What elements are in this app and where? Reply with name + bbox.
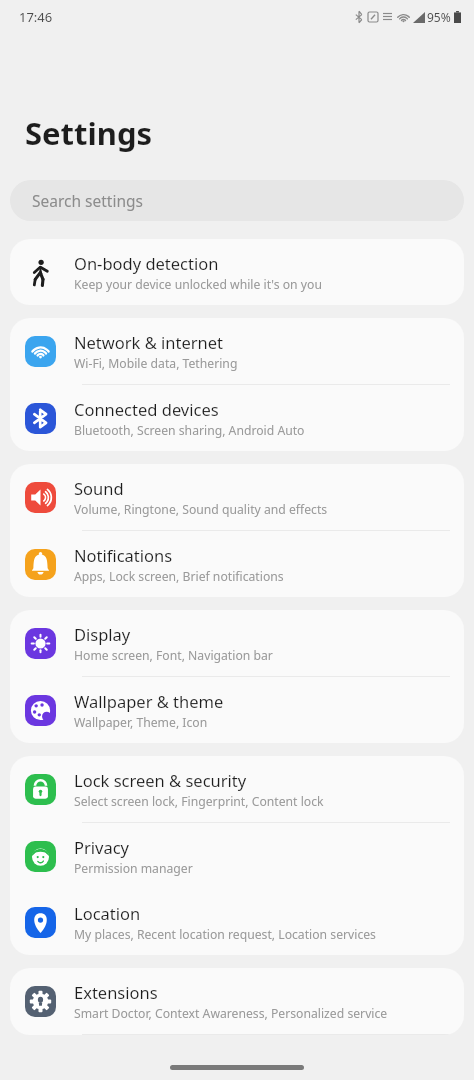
button[interactable]: Sound [10,464,464,531]
button[interactable]: Wallpaper & theme [10,677,464,743]
staticText: 95% [427,9,451,25]
staticText: Extensions [74,981,158,1003]
staticText: My places, Recent location request, Loca… [74,926,376,943]
button[interactable]: Search settings [10,180,464,221]
button[interactable]: Extensions [10,968,464,1035]
staticText: Wallpaper, Theme, Icon [74,714,208,731]
staticText: Search settings [32,190,143,211]
button[interactable]: Location [10,889,464,955]
staticText: Volume, Ringtone, Sound quality and effe… [74,501,328,518]
staticText: Location [74,902,141,924]
button[interactable]: Network & internet [10,318,464,385]
staticText: Connected devices [74,398,219,420]
button[interactable]: Connected devices [10,385,464,451]
staticText: Smart Doctor, Context Awareness, Persona… [74,1005,388,1022]
staticText: Notifications [74,544,173,566]
button[interactable]: Display [10,610,464,677]
button[interactable]: Lock screen & security [10,756,464,823]
button[interactable]: On-body detection [10,239,464,305]
staticText: Wi-Fi, Mobile data, Tethering [74,355,238,372]
staticText: Network & internet [74,331,224,353]
staticText: Select screen lock, Fingerprint, Content… [74,793,324,810]
staticText: Privacy [74,836,130,858]
staticText: Home screen, Font, Navigation bar [74,647,273,664]
staticText: Apps, Lock screen, Brief notifications [74,568,284,585]
button[interactable]: Notifications [10,531,464,597]
staticText: On-body detection [74,252,219,274]
staticText: Wallpaper & theme [74,690,224,712]
staticText: Lock screen & security [74,769,247,791]
staticText: Keep your device unlocked while it's on … [74,276,322,293]
staticText: Permission manager [74,860,193,877]
staticText: Sound [74,477,124,499]
staticText: Bluetooth, Screen sharing, Android Auto [74,422,305,439]
staticText: Settings [25,112,153,154]
staticText: Display [74,623,131,645]
button[interactable]: Privacy [10,823,464,889]
staticText: 17:46 [19,8,53,26]
